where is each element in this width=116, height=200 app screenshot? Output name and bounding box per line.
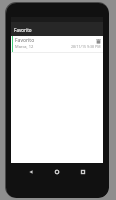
button[interactable]: Favorito bbox=[11, 36, 103, 52]
button[interactable]: Favorito bbox=[11, 22, 103, 36]
staticText: 28/11/15 9:38 PM bbox=[71, 44, 101, 49]
staticText: Marca, 12 bbox=[15, 44, 34, 49]
staticText: Favorito bbox=[14, 27, 32, 33]
button[interactable]: Home bbox=[44, 163, 70, 181]
button[interactable]: Recent apps bbox=[70, 163, 96, 181]
button[interactable]: Back bbox=[18, 163, 44, 181]
button[interactable]: Delete bbox=[96, 39, 101, 44]
staticText: Favorito bbox=[15, 37, 35, 44]
